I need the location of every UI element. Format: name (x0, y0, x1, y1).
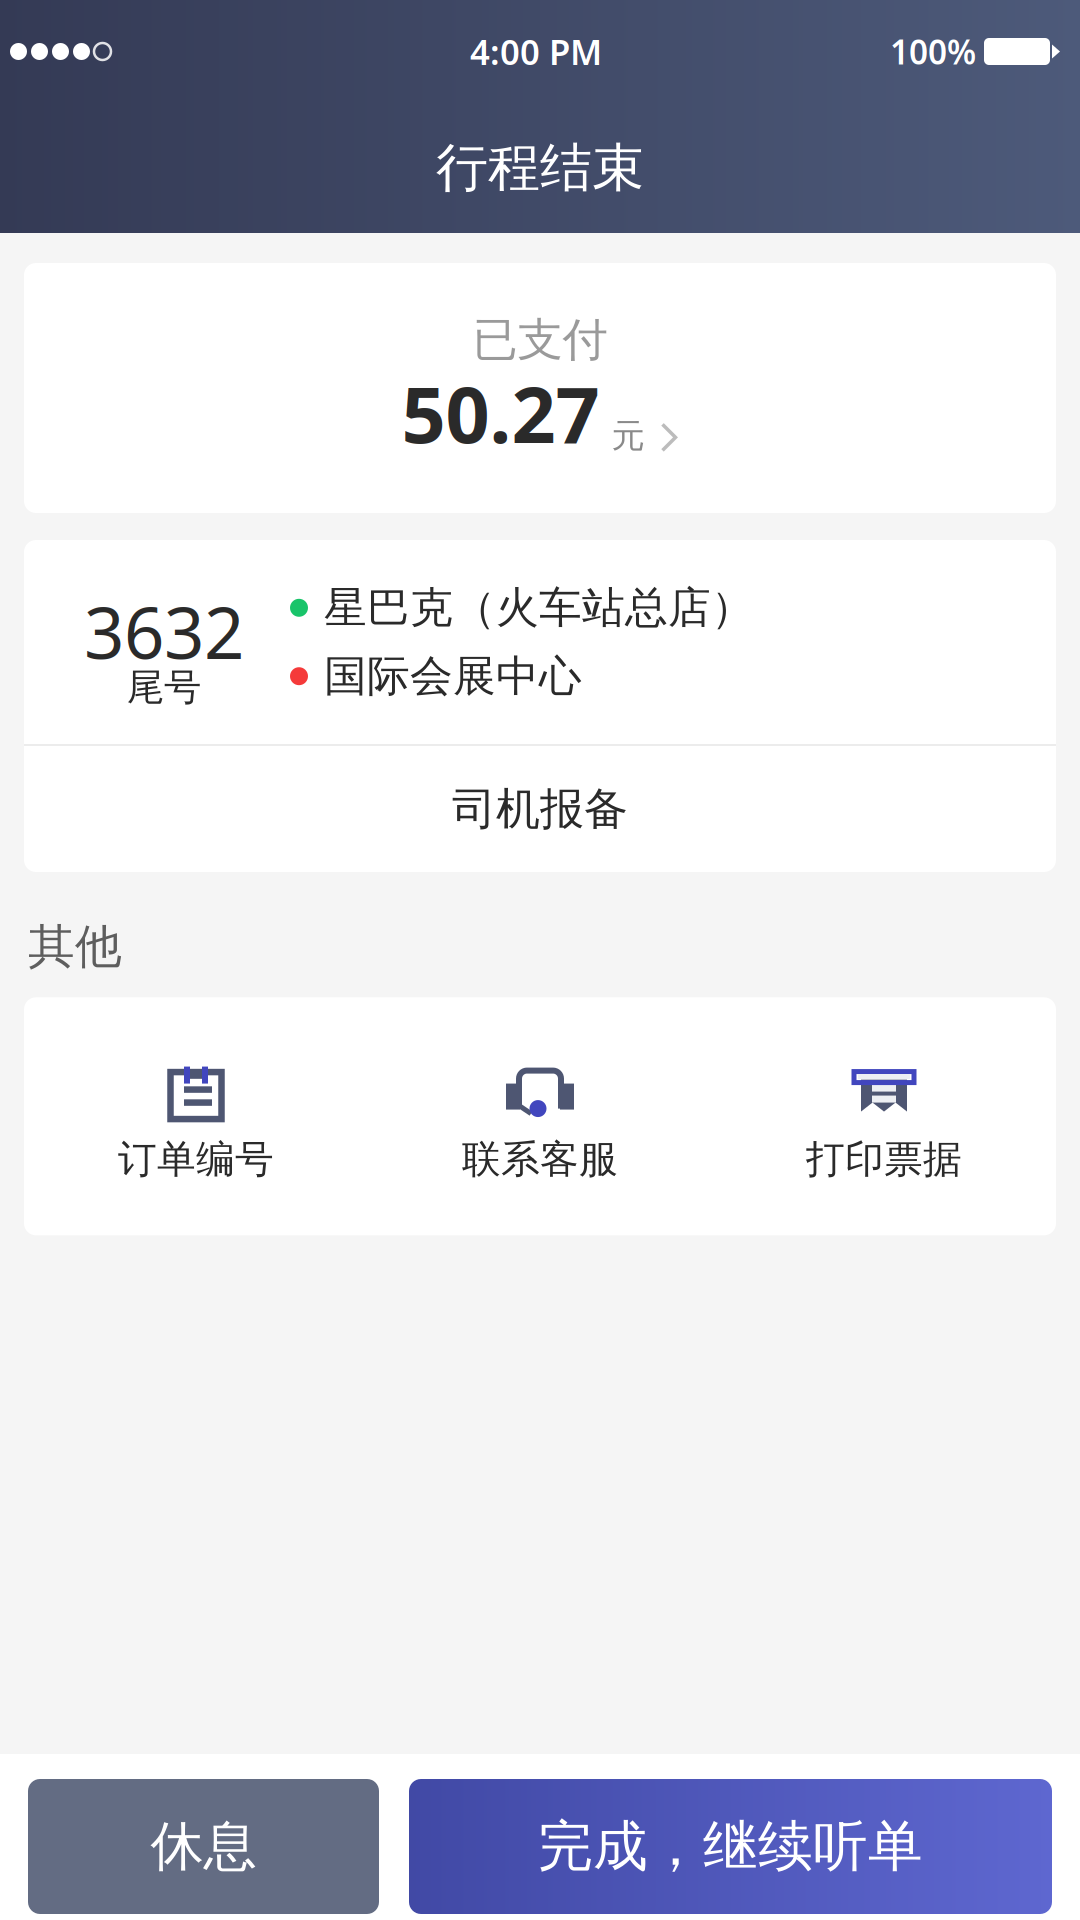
button[interactable]: 完成，继续听单 (409, 1779, 1052, 1914)
button[interactable]: 订单编号 (24, 997, 368, 1235)
staticText: 元 (611, 415, 644, 456)
staticText: 休息 (150, 1814, 256, 1879)
button[interactable]: 司机报备 (24, 746, 1056, 872)
staticText: 尾号 (127, 664, 201, 710)
staticText: 联系客服 (462, 1136, 618, 1183)
staticText: 打印票据 (806, 1136, 962, 1183)
button[interactable]: 已支付 (24, 263, 1056, 513)
staticText: 4:00 PM (470, 28, 602, 74)
staticText: 3632 (84, 585, 244, 678)
staticText: 星巴克（火车站总店） (324, 582, 754, 634)
button[interactable]: 打印票据 (712, 997, 1056, 1235)
staticText: 50.27 (401, 362, 599, 464)
button[interactable]: 休息 (28, 1779, 379, 1914)
staticText: 订单编号 (118, 1136, 274, 1183)
staticText: 100% (890, 29, 976, 74)
staticText: 其他 (28, 918, 122, 975)
button[interactable]: 联系客服 (368, 997, 712, 1235)
staticText: 已支付 (472, 312, 607, 368)
staticText: 行程结束 (436, 136, 644, 200)
staticText: 完成，继续听单 (538, 1813, 923, 1880)
staticText: 司机报备 (452, 782, 628, 836)
staticText: 国际会展中心 (324, 650, 582, 702)
